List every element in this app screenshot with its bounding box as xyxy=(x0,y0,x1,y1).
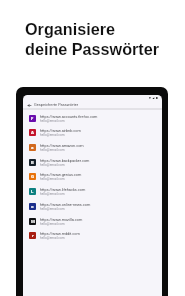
staticText: hello@email.com xyxy=(40,236,65,240)
button[interactable]: A xyxy=(23,125,162,140)
button[interactable]: M xyxy=(23,214,162,229)
staticText: https://www.backpacker.com xyxy=(40,158,90,162)
staticText: M xyxy=(31,219,35,225)
staticText: F xyxy=(31,116,34,122)
staticText: hello@email.com xyxy=(40,148,65,152)
button[interactable]: G xyxy=(23,169,162,184)
staticText: hello@email.com xyxy=(40,177,65,181)
staticText: hello@email.com xyxy=(40,192,65,196)
button[interactable]: L xyxy=(23,184,162,199)
staticText: https://www.genius.com xyxy=(40,172,82,176)
staticText: https://www.online-news.com xyxy=(40,202,91,206)
staticText: Organisiere deine Passwörter xyxy=(25,20,160,59)
staticText: https://www.accounts.firefox.com xyxy=(40,114,98,118)
button[interactable]: B xyxy=(23,155,162,170)
staticText: hello@email.com xyxy=(40,222,65,226)
staticText: hello@email.com xyxy=(40,119,65,123)
button[interactable]: F xyxy=(23,111,162,126)
staticText: https://www.amazon.com xyxy=(40,143,84,147)
staticText: r xyxy=(32,233,34,239)
staticText: hello@email.com xyxy=(40,163,65,167)
staticText: A xyxy=(31,130,34,136)
button[interactable]: r xyxy=(23,228,162,243)
button[interactable]: o xyxy=(23,199,162,214)
staticText: hello@email.com xyxy=(40,133,65,137)
staticText: a xyxy=(31,145,34,151)
staticText: G xyxy=(31,174,35,180)
staticText: https://www.mozilla.com xyxy=(40,217,83,221)
staticText: Gespeicherte Passwörter xyxy=(34,102,79,107)
staticText: https://www.lifehacks.com xyxy=(40,187,86,191)
staticText: L xyxy=(31,189,34,195)
staticText: https://www.airbnb.com xyxy=(40,128,81,132)
staticText: o xyxy=(31,204,34,210)
button[interactable]: Zurück xyxy=(25,101,33,109)
staticText: hello@email.com xyxy=(40,207,65,211)
staticText: B xyxy=(31,160,34,166)
button[interactable]: a xyxy=(23,140,162,155)
staticText: https://www.reddit.com xyxy=(40,231,80,235)
